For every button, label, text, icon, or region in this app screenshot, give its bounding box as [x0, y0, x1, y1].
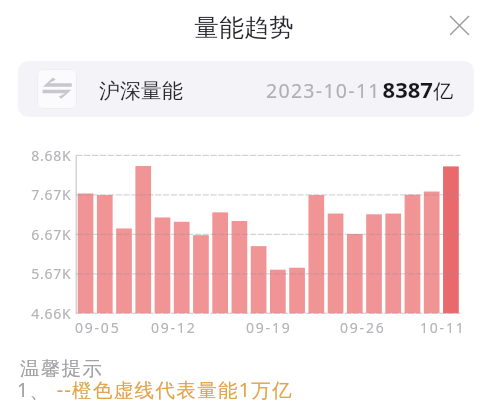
button[interactable]: Close	[436, 2, 482, 48]
staticText: 沪深量能	[99, 78, 183, 104]
staticText: 温馨提示	[20, 356, 104, 381]
staticText: 2023-10-11 8387亿	[266, 74, 453, 104]
button[interactable]: 沪深量能	[18, 61, 474, 117]
staticText: 量能趋势	[194, 12, 294, 43]
staticText: 1、 --橙色虚线代表量能1万亿	[17, 376, 294, 403]
